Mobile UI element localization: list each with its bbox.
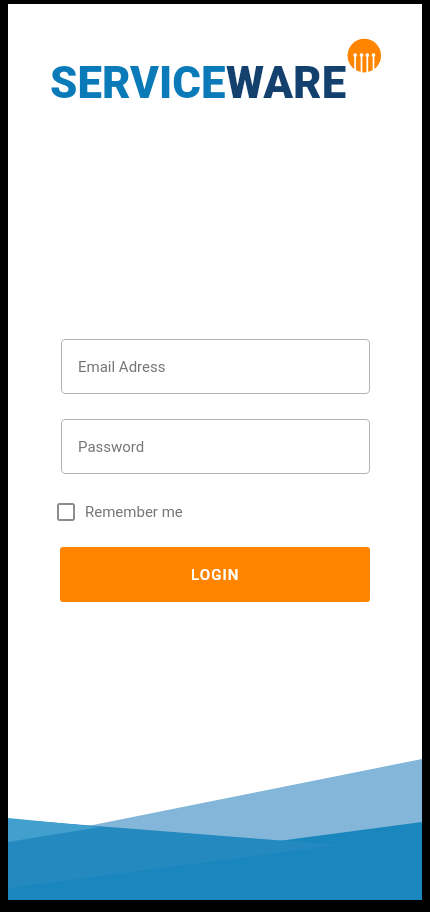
- button[interactable]: Remember me: [57, 495, 183, 529]
- staticText: Password: [78, 438, 145, 456]
- staticText: LOGIN: [191, 566, 240, 584]
- staticText: SERVICE: [50, 56, 226, 109]
- button[interactable]: LOGIN: [60, 547, 370, 602]
- staticText: Email Adress: [78, 358, 166, 376]
- staticText: WARE: [226, 56, 347, 109]
- other: Serviceware logo: [348, 38, 384, 74]
- button[interactable]: Password: [61, 419, 370, 474]
- button[interactable]: Email Adress: [61, 339, 370, 394]
- staticText: Remember me: [85, 503, 183, 521]
